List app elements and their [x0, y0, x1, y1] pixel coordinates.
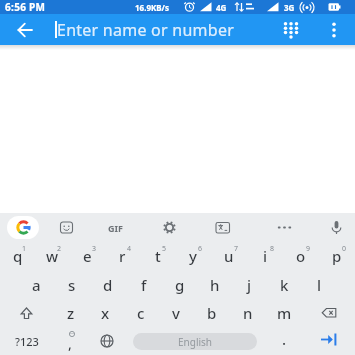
staticText: 3G — [284, 2, 295, 13]
button[interactable] — [302, 327, 355, 355]
button[interactable]: m — [266, 299, 302, 327]
button[interactable]: x — [88, 299, 123, 327]
staticText: v — [172, 303, 180, 323]
staticText: u — [224, 246, 234, 266]
button[interactable] — [318, 14, 350, 45]
staticText: 4G — [216, 2, 227, 13]
button[interactable] — [89, 327, 125, 355]
staticText: x — [101, 303, 110, 323]
button[interactable]: z — [53, 299, 88, 327]
button[interactable]: d — [90, 270, 126, 299]
button[interactable]: b — [194, 299, 230, 327]
staticText: 9 — [306, 244, 311, 254]
button[interactable]: s — [54, 270, 90, 299]
staticText: 4 — [127, 244, 132, 254]
staticText: Enter name or number — [57, 19, 235, 41]
staticText: q — [13, 246, 23, 266]
staticText: m — [277, 303, 292, 323]
staticText: 2 — [57, 244, 62, 254]
staticText: i — [263, 246, 268, 266]
staticText: r — [119, 246, 126, 266]
button[interactable]: Enter name or number — [57, 19, 235, 41]
button[interactable]: q — [0, 242, 35, 270]
button[interactable]: n — [230, 299, 266, 327]
staticText: b — [207, 303, 217, 323]
button[interactable] — [271, 14, 311, 45]
button[interactable]: k — [267, 270, 302, 299]
button[interactable] — [7, 216, 39, 239]
button[interactable]: c — [123, 299, 158, 327]
staticText: f — [141, 275, 147, 295]
staticText: o — [296, 246, 306, 266]
staticText: y — [189, 246, 197, 266]
button[interactable] — [208, 213, 236, 242]
button[interactable]: u — [211, 242, 247, 270]
staticText: h — [210, 275, 220, 295]
button[interactable]: ?123 — [0, 327, 53, 355]
button[interactable] — [52, 213, 80, 242]
button[interactable]: i — [247, 242, 283, 270]
staticText: 6:56 PM — [5, 0, 46, 14]
staticText: ?123 — [15, 334, 39, 349]
staticText: t — [155, 246, 161, 266]
staticText: g — [175, 275, 185, 295]
button[interactable]: r — [105, 242, 140, 270]
staticText: 3 — [92, 244, 97, 254]
button[interactable] — [0, 299, 53, 327]
staticText: 1 — [22, 244, 27, 254]
button[interactable]: t — [140, 242, 175, 270]
staticText: English — [178, 335, 213, 349]
staticText: GIF — [108, 222, 123, 234]
button[interactable]: p — [319, 242, 355, 270]
button[interactable]: v — [158, 299, 194, 327]
staticText: 8 — [270, 244, 275, 254]
button[interactable] — [322, 213, 350, 242]
staticText: a — [32, 275, 41, 295]
staticText: d — [103, 275, 113, 295]
button[interactable]: j — [232, 270, 267, 299]
button[interactable]: l — [302, 270, 337, 299]
button[interactable]: y — [175, 242, 211, 270]
button[interactable]: . — [266, 327, 302, 355]
staticText: 6 — [198, 244, 203, 254]
staticText: . — [282, 329, 287, 349]
staticText: z — [67, 303, 75, 323]
staticText: s — [68, 275, 76, 295]
staticText: j — [247, 275, 252, 295]
button[interactable]: , — [53, 327, 89, 355]
staticText: k — [280, 275, 289, 295]
staticText: 16.9KB/s — [135, 2, 169, 13]
button[interactable] — [302, 299, 355, 327]
staticText: c — [137, 303, 145, 323]
staticText: p — [332, 246, 342, 266]
staticText: 0 — [342, 244, 347, 254]
staticText: e — [83, 246, 92, 266]
staticText: w — [46, 246, 59, 266]
staticText: 5 — [162, 244, 167, 254]
button[interactable]: a — [18, 270, 54, 299]
button[interactable] — [270, 213, 298, 242]
button[interactable]: g — [162, 270, 197, 299]
staticText: 7 — [234, 244, 239, 254]
button[interactable]: e — [70, 242, 105, 270]
button[interactable]: w — [35, 242, 70, 270]
button[interactable]: o — [283, 242, 319, 270]
button[interactable]: f — [126, 270, 162, 299]
staticText: l — [317, 275, 322, 295]
button[interactable]: GIF — [101, 213, 129, 242]
staticText: n — [243, 303, 253, 323]
button[interactable]: h — [197, 270, 232, 299]
button[interactable] — [155, 213, 183, 242]
staticText: , — [68, 334, 72, 353]
button[interactable]: English — [124, 327, 266, 355]
button[interactable] — [10, 14, 40, 45]
